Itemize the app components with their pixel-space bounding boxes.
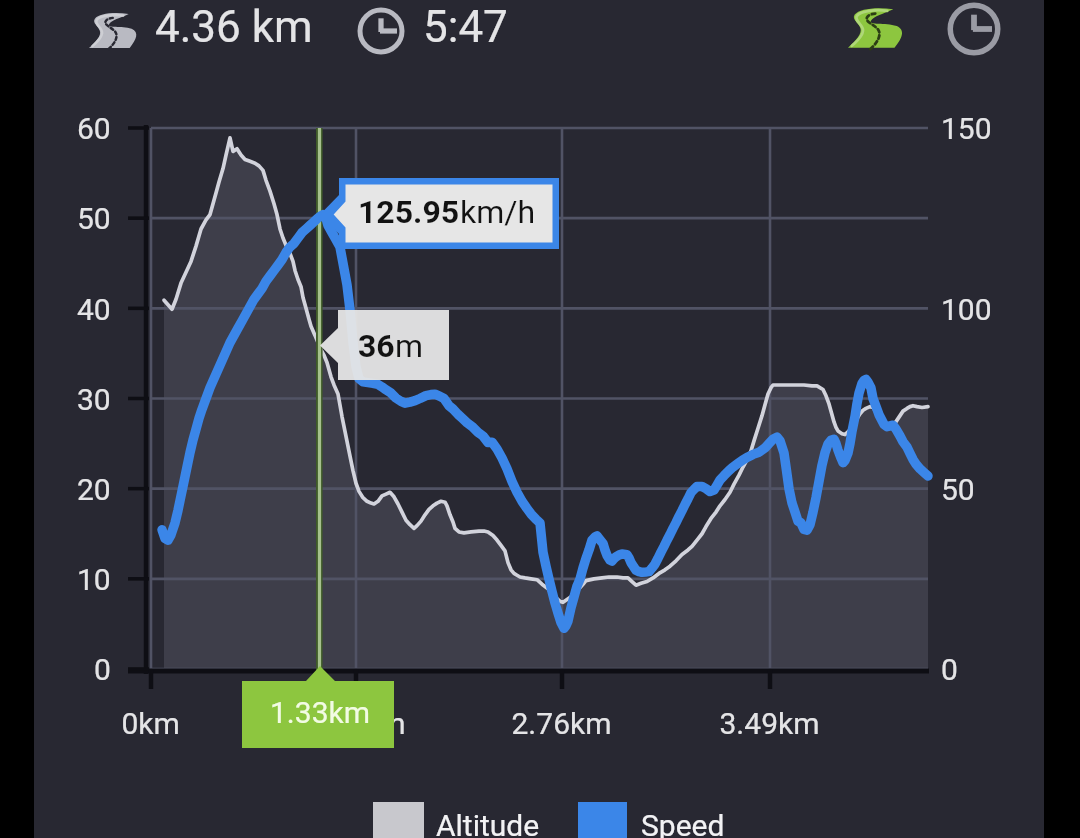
button[interactable]: Duration 5:47 [350,0,520,62]
button[interactable]: Altitude and speed graph [128,110,944,690]
button[interactable]: Distance chart [838,0,918,62]
button[interactable]: Speed series [578,798,733,838]
button[interactable]: Altitude series [373,798,541,838]
button[interactable]: Distance 4.36 km [80,0,320,62]
button[interactable]: Time chart [938,0,1016,62]
